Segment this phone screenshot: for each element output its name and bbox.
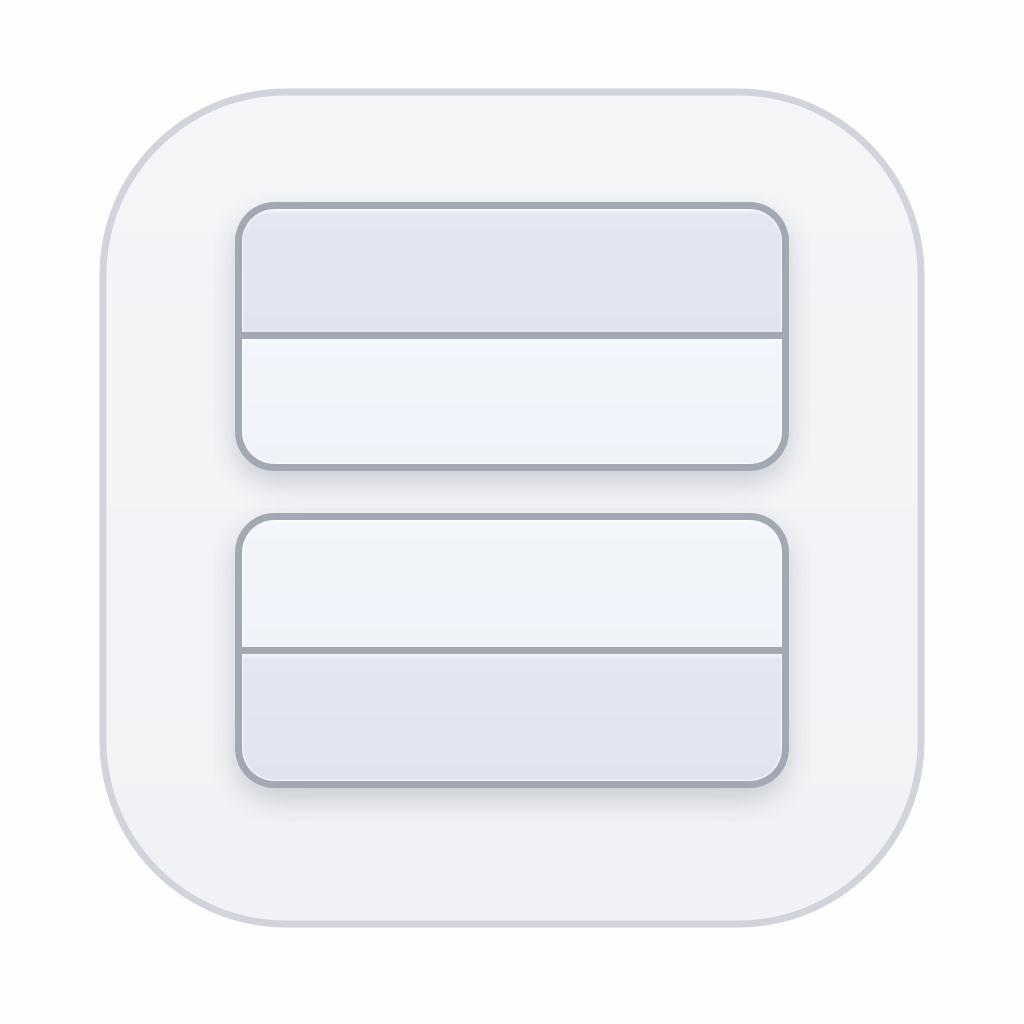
button[interactable]: Second row (238, 516, 785, 784)
button[interactable]: First row (238, 205, 785, 467)
